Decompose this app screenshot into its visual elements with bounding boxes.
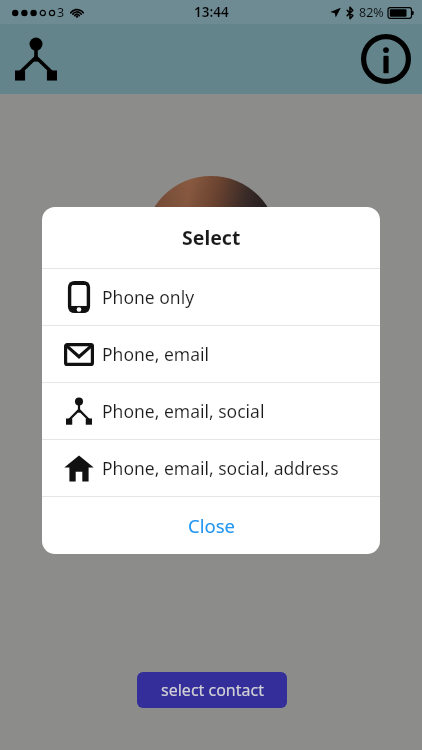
staticText: 13:44 [194,3,229,21]
button[interactable]: Share [10,33,62,85]
button[interactable]: select contact [137,672,287,708]
staticText: Phone, email [102,342,209,366]
button[interactable]: Phone, email [42,326,380,382]
staticText: 3 [57,4,65,21]
staticText: Close [188,513,235,538]
staticText: Phone only [102,285,195,309]
staticText: select contact [161,679,264,701]
button[interactable]: Close [42,497,380,554]
button[interactable]: Phone only [42,269,380,325]
staticText: Phone, email, social, address [102,456,339,480]
staticText: Select [182,224,241,251]
button[interactable]: Phone, email, social [42,383,380,439]
button[interactable]: Phone, email, social, address [42,440,380,496]
button[interactable]: Info [358,31,414,87]
staticText: Phone, email, social [102,399,265,423]
staticText: 82% [359,4,384,21]
